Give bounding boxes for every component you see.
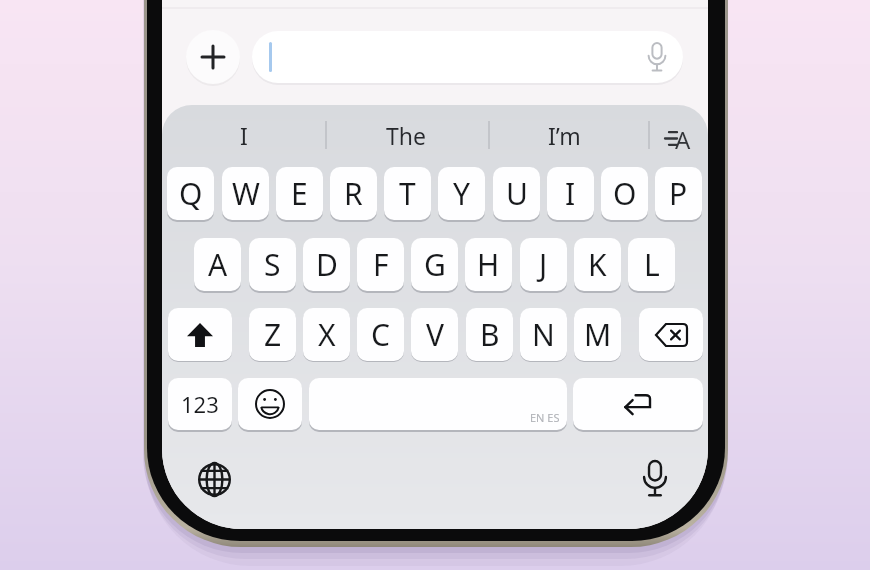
staticText: B xyxy=(480,314,500,355)
staticText: A xyxy=(675,123,691,153)
staticText: EN ES xyxy=(530,410,560,425)
staticText: C xyxy=(371,314,390,355)
staticText: I xyxy=(565,173,576,214)
staticText: Q xyxy=(179,173,203,214)
staticText: X xyxy=(318,314,336,355)
staticText: R xyxy=(344,173,363,214)
staticText: F xyxy=(373,244,389,285)
staticText: S xyxy=(264,244,281,285)
staticText: V xyxy=(426,314,444,355)
staticText: D xyxy=(316,244,338,285)
staticText: K xyxy=(588,244,607,285)
staticText: The xyxy=(386,120,426,151)
staticText: I xyxy=(240,120,248,151)
staticText: W xyxy=(232,173,260,214)
staticText: J xyxy=(539,244,548,285)
staticText: L xyxy=(644,244,660,285)
staticText: M xyxy=(584,314,612,355)
staticText: E xyxy=(291,173,308,214)
staticText: T xyxy=(399,173,416,214)
staticText: U xyxy=(506,173,528,214)
staticText: 123 xyxy=(181,389,219,419)
staticText: G xyxy=(424,244,446,285)
staticText: O xyxy=(613,173,637,214)
staticText: A xyxy=(208,244,228,285)
staticText: Y xyxy=(453,173,470,214)
staticText: P xyxy=(669,173,688,214)
staticText: I’m xyxy=(548,120,581,151)
staticText: N xyxy=(532,314,555,355)
staticText: H xyxy=(477,244,500,285)
staticText: Z xyxy=(264,314,282,355)
